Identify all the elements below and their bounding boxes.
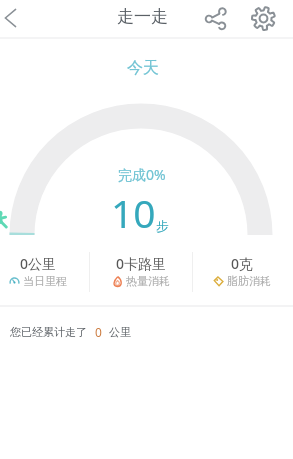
staticText: 10: [111, 186, 156, 239]
button[interactable]: Settings: [246, 1, 280, 35]
staticText: 热量消耗: [126, 274, 170, 288]
staticText: 脂肪消耗: [227, 274, 271, 288]
button[interactable]: Back: [0, 1, 27, 35]
staticText: 0卡路里: [116, 254, 167, 273]
staticText: 今天: [127, 58, 159, 78]
button[interactable]: 0公里: [0, 246, 88, 300]
staticText: 0克: [231, 254, 254, 273]
button[interactable]: 0卡路里: [91, 246, 191, 300]
button[interactable]: Share: [198, 1, 232, 35]
staticText: 您已经累计走了: [10, 325, 87, 339]
staticText: 0: [95, 324, 102, 340]
staticText: 当日里程: [23, 274, 67, 288]
staticText: 公里: [109, 325, 131, 339]
staticText: 完成0%: [118, 165, 166, 184]
staticText: 0公里: [20, 254, 57, 273]
staticText: 走一走: [117, 6, 168, 27]
staticText: 步: [156, 218, 169, 234]
button[interactable]: 0克: [192, 246, 292, 300]
